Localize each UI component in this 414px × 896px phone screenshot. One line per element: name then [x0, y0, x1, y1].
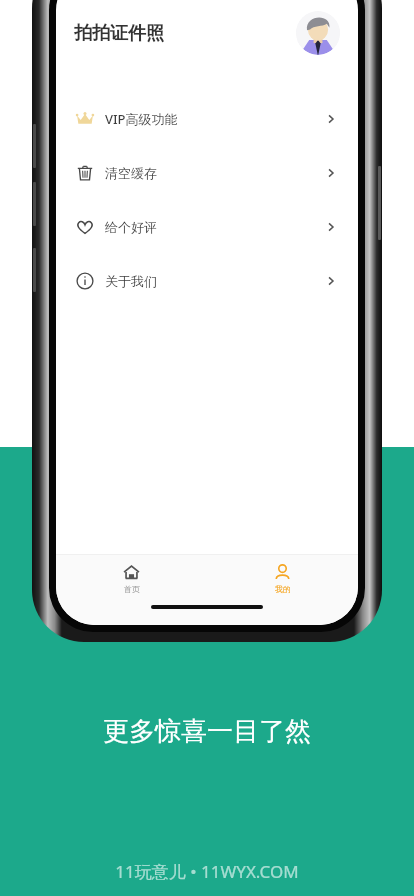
staticText: 更多惊喜一目了然 [103, 715, 311, 748]
button[interactable]: 我的 [254, 561, 311, 597]
staticText: VIP高级功能 [105, 110, 178, 128]
staticText: 拍拍证件照 [74, 22, 164, 45]
staticText: 清空缓存 [105, 165, 157, 181]
button[interactable]: VIP高级功能 [56, 92, 358, 146]
button[interactable]: 清空缓存 [56, 146, 358, 200]
staticText: 我的 [275, 584, 291, 594]
button[interactable]: Profile avatar [296, 11, 340, 55]
staticText: 关于我们 [105, 273, 157, 289]
staticText: 11玩意儿 • 11WYX.COM [115, 860, 299, 883]
staticText: 首页 [124, 584, 140, 594]
button[interactable]: 给个好评 [56, 200, 358, 254]
staticText: 给个好评 [105, 219, 157, 235]
button[interactable]: 首页 [103, 561, 160, 597]
button[interactable]: 关于我们 [56, 254, 358, 308]
